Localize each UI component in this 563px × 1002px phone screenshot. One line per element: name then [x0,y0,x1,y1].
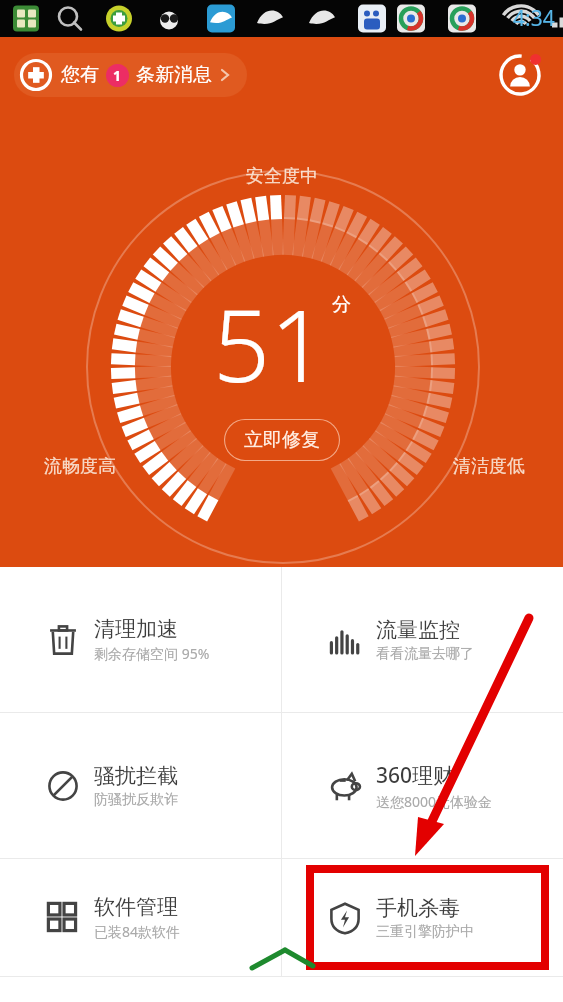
staticText: 1 [113,66,122,85]
button[interactable]: 手机杀毒 [282,859,563,976]
button[interactable]: Account [497,52,543,98]
button[interactable]: 您有 [14,53,247,97]
staticText: 三重引擎防护中 [376,923,474,941]
staticText: 骚扰拦截 [94,763,178,789]
staticText: 您有 [61,63,99,87]
staticText: 条新消息 [136,63,212,87]
staticText: 立即修复 [244,428,320,452]
button[interactable]: 清理加速 [0,567,281,712]
staticText: 51 [213,275,328,411]
staticText: 剩余存储空间 95% [94,644,210,663]
staticText: 手机杀毒 [376,895,460,921]
button[interactable]: 立即修复 [224,419,340,461]
button[interactable]: 流量监控 [282,567,563,712]
staticText: 防骚扰反欺诈 [94,791,178,809]
staticText: 已装84款软件 [94,922,181,941]
staticText: 安全度中 [246,165,318,188]
staticText: 软件管理 [94,894,178,920]
staticText: 清洁度低 [453,455,525,478]
button[interactable]: 软件管理 [0,859,281,976]
staticText: 360理财 [376,761,455,790]
staticText: 分 [332,293,351,317]
staticText: 送您8000元体验金 [376,792,493,811]
staticText: 4:34 [513,4,555,33]
staticText: 流畅度高 [44,455,116,478]
staticText: 清理加速 [94,616,178,642]
staticText: 看看流量去哪了 [376,645,474,663]
staticText: 流量监控 [376,617,460,643]
button[interactable]: 360理财 [282,713,563,858]
button[interactable]: 骚扰拦截 [0,713,281,858]
